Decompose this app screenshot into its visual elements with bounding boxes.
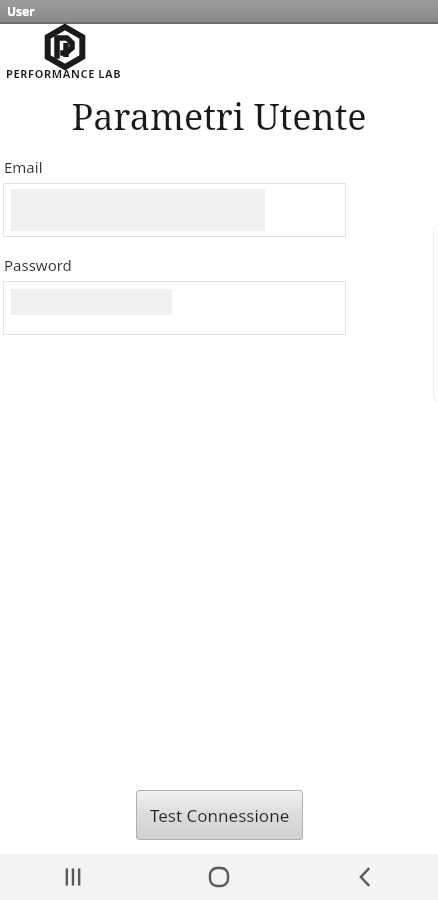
button[interactable] [3, 281, 346, 335]
staticText: User [7, 3, 35, 19]
staticText: Parametri Utente [0, 92, 438, 141]
button[interactable] [3, 183, 346, 237]
button[interactable]: Home [146, 854, 292, 900]
button[interactable]: Back [292, 854, 438, 900]
staticText: Email [4, 157, 43, 177]
staticText: PERFORMANCE LAB [6, 66, 122, 81]
staticText: Password [4, 255, 72, 275]
button[interactable]: Recents [0, 854, 146, 900]
staticText: Test Connessione [150, 804, 290, 827]
button[interactable]: Test Connessione [136, 790, 303, 840]
